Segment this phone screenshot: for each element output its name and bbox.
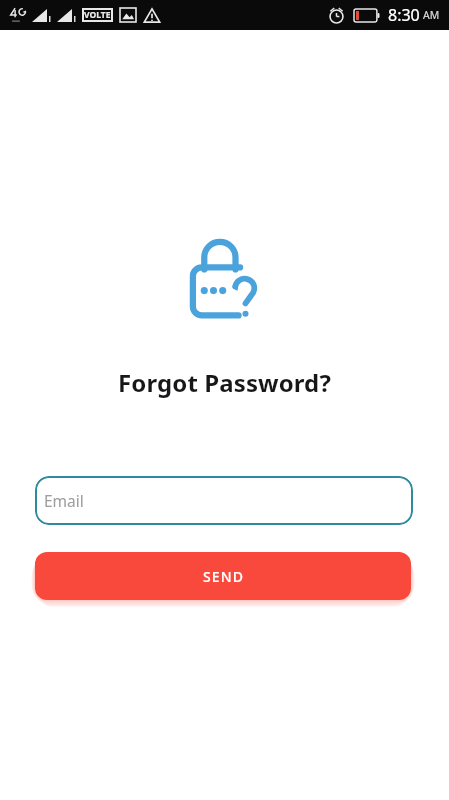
button[interactable]: Email — [35, 476, 413, 525]
other: Forgot password lock — [189, 239, 260, 319]
staticText: Email — [44, 490, 84, 511]
button[interactable]: SEND — [35, 552, 411, 600]
staticText: SEND — [203, 567, 244, 586]
staticText: 8:30 — [388, 4, 420, 26]
staticText: Forgot Password? — [0, 366, 449, 399]
staticText: VOLTE — [84, 9, 111, 21]
staticText: AM — [423, 8, 440, 22]
